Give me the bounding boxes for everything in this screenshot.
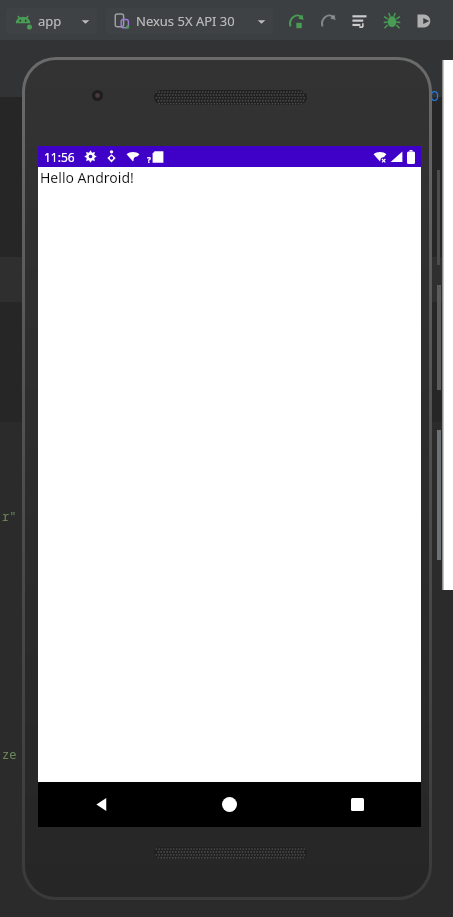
button[interactable]: Home (165, 782, 293, 827)
button[interactable]: Apply changes (347, 8, 373, 34)
staticText: Hello Android! (40, 168, 134, 187)
button[interactable]: Profile (411, 8, 437, 34)
button[interactable]: app (6, 8, 97, 34)
button[interactable]: Nexus 5X API 30 (106, 8, 273, 34)
staticText: ? (147, 154, 151, 165)
button[interactable]: Recent apps (293, 782, 421, 827)
staticText: Nexus 5X API 30 (136, 12, 235, 30)
staticText: r" (2, 508, 17, 524)
button[interactable]: Back (38, 782, 165, 827)
button[interactable]: Debug (379, 8, 405, 34)
staticText: ze (2, 746, 17, 762)
staticText: app (38, 12, 62, 30)
button[interactable]: Run with coverage (315, 8, 341, 34)
staticText: 11:56 (44, 149, 75, 165)
button[interactable]: Run (283, 8, 309, 34)
staticText: O (430, 85, 440, 105)
